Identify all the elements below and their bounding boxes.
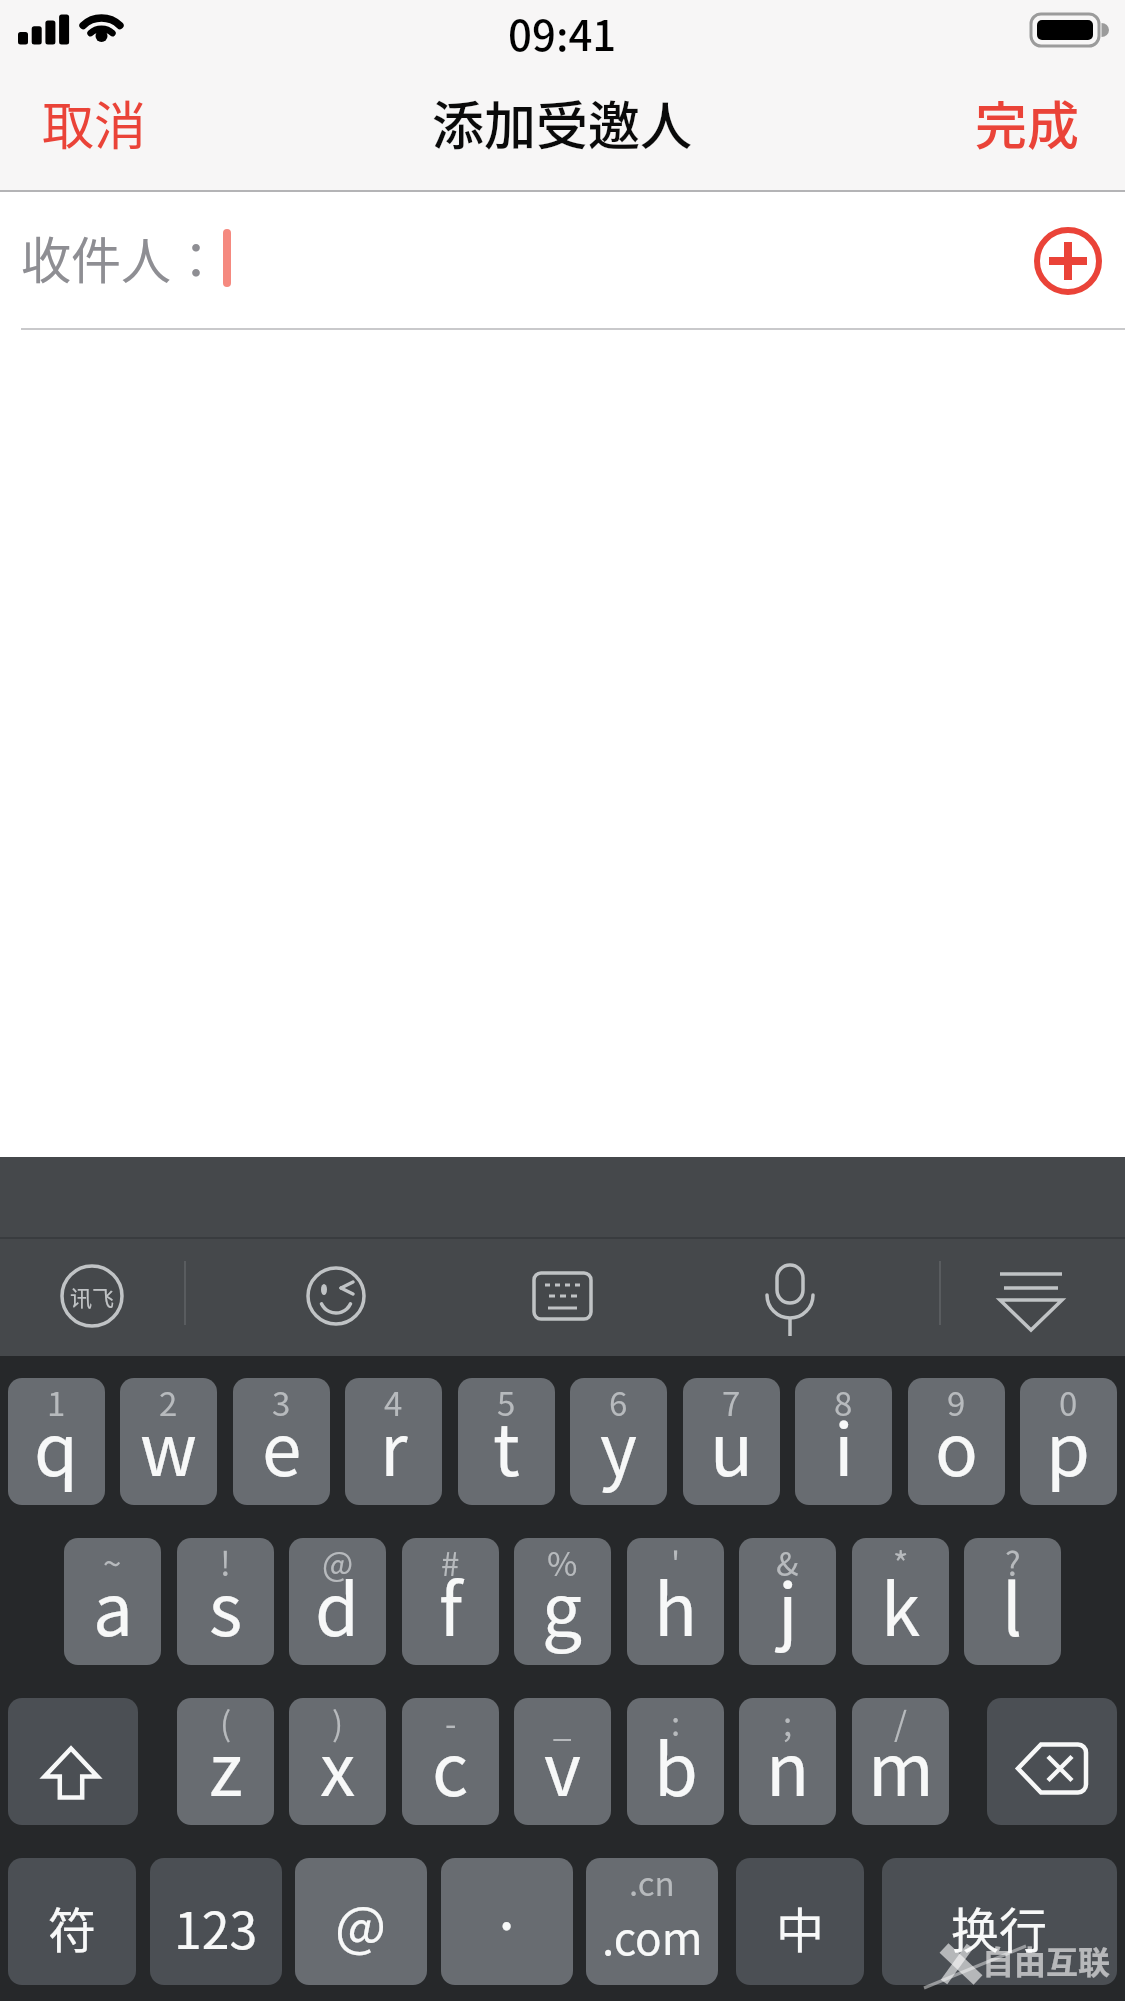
button[interactable]: 换行 bbox=[882, 1858, 1117, 1985]
staticText: · bbox=[490, 1878, 524, 1965]
staticText: ' bbox=[671, 1538, 681, 1584]
button[interactable]: ) bbox=[289, 1698, 386, 1825]
staticText: 8 bbox=[834, 1378, 853, 1424]
button[interactable]: : bbox=[627, 1698, 724, 1825]
staticText: 0 bbox=[1059, 1378, 1078, 1424]
staticText: j bbox=[778, 1554, 798, 1657]
button[interactable]: 5 bbox=[458, 1378, 555, 1505]
button[interactable]: * bbox=[852, 1538, 949, 1665]
staticText: : bbox=[671, 1698, 681, 1744]
staticText: / bbox=[894, 1698, 907, 1744]
staticText: 取消 bbox=[42, 85, 147, 160]
staticText: q bbox=[34, 1394, 79, 1497]
staticText: 4 bbox=[384, 1378, 403, 1424]
staticText: 6 bbox=[609, 1378, 628, 1424]
staticText: .cn bbox=[629, 1858, 675, 1904]
staticText: w bbox=[140, 1394, 197, 1497]
button[interactable]: · bbox=[441, 1858, 573, 1985]
button[interactable]: ? bbox=[964, 1538, 1061, 1665]
staticText: 添加受邀人 bbox=[432, 85, 693, 160]
staticText: _ bbox=[553, 1698, 572, 1744]
staticText: ) bbox=[332, 1698, 344, 1744]
staticText: p bbox=[1046, 1394, 1091, 1497]
button[interactable]: 符 bbox=[8, 1858, 136, 1985]
button[interactable]: 6 bbox=[570, 1378, 667, 1505]
staticText: 换行 bbox=[951, 1892, 1048, 1962]
button[interactable]: 1 bbox=[8, 1378, 105, 1505]
staticText: b bbox=[654, 1714, 698, 1817]
staticText: @ bbox=[322, 1538, 354, 1584]
staticText: 2 bbox=[159, 1378, 178, 1424]
button[interactable]: 7 bbox=[683, 1378, 780, 1505]
button[interactable] bbox=[225, 1239, 450, 1356]
staticText: m bbox=[868, 1714, 934, 1817]
staticText: f bbox=[439, 1554, 463, 1657]
staticText: 3 bbox=[272, 1378, 291, 1424]
staticText: * bbox=[893, 1538, 909, 1584]
button[interactable]: _ bbox=[514, 1698, 611, 1825]
button[interactable]: ~ bbox=[64, 1538, 161, 1665]
button[interactable]: 中 bbox=[736, 1858, 864, 1985]
staticText: 收件人： bbox=[21, 221, 221, 293]
button[interactable]: 0 bbox=[1020, 1378, 1117, 1505]
staticText: t bbox=[493, 1394, 520, 1497]
staticText: 1 bbox=[47, 1378, 66, 1424]
button[interactable] bbox=[675, 1239, 900, 1356]
button[interactable]: # bbox=[402, 1538, 499, 1665]
button[interactable]: 2 bbox=[120, 1378, 217, 1505]
button[interactable] bbox=[8, 1698, 138, 1825]
button[interactable]: - bbox=[402, 1698, 499, 1825]
button[interactable]: 9 bbox=[908, 1378, 1005, 1505]
button[interactable]: & bbox=[739, 1538, 836, 1665]
staticText: a bbox=[93, 1554, 133, 1657]
staticText: s bbox=[209, 1554, 243, 1657]
button[interactable]: 4 bbox=[345, 1378, 442, 1505]
button[interactable]: ; bbox=[739, 1698, 836, 1825]
button[interactable]: ( bbox=[177, 1698, 274, 1825]
staticText: 中 bbox=[776, 1892, 825, 1962]
button[interactable] bbox=[987, 1698, 1117, 1825]
staticText: 123 bbox=[174, 1891, 258, 1963]
staticText: r bbox=[380, 1394, 408, 1497]
staticText: z bbox=[209, 1714, 243, 1817]
staticText: ~ bbox=[103, 1538, 122, 1584]
button[interactable]: 8 bbox=[795, 1378, 892, 1505]
button[interactable]: 取消 bbox=[42, 85, 147, 160]
staticText: d bbox=[315, 1554, 360, 1657]
staticText: # bbox=[441, 1538, 460, 1584]
staticText: v bbox=[544, 1714, 581, 1817]
staticText: .com bbox=[602, 1904, 703, 1968]
button[interactable] bbox=[0, 1239, 225, 1356]
button[interactable] bbox=[450, 1239, 675, 1356]
button[interactable] bbox=[900, 1239, 1125, 1356]
staticText: 5 bbox=[497, 1378, 516, 1424]
button[interactable]: 收件人： bbox=[0, 192, 1125, 330]
staticText: i bbox=[834, 1394, 854, 1497]
staticText: h bbox=[654, 1554, 698, 1657]
staticText: & bbox=[776, 1538, 799, 1584]
button[interactable]: @ bbox=[289, 1538, 386, 1665]
staticText: 09:41 bbox=[508, 2, 617, 60]
button[interactable]: @ bbox=[295, 1858, 427, 1985]
staticText: c bbox=[432, 1714, 469, 1817]
staticText: u bbox=[710, 1394, 754, 1497]
button[interactable]: % bbox=[514, 1538, 611, 1665]
button[interactable]: / bbox=[852, 1698, 949, 1825]
button[interactable]: 123 bbox=[150, 1858, 282, 1985]
button[interactable]: ' bbox=[627, 1538, 724, 1665]
staticText: 符 bbox=[48, 1892, 97, 1962]
staticText: 9 bbox=[947, 1378, 966, 1424]
staticText: ( bbox=[220, 1698, 232, 1744]
button[interactable]: 完成 bbox=[975, 85, 1080, 160]
staticText: ; bbox=[783, 1698, 793, 1744]
staticText: 完成 bbox=[975, 85, 1080, 160]
staticText: 讯飞 bbox=[70, 1280, 115, 1312]
staticText: l bbox=[1002, 1554, 1023, 1657]
button[interactable] bbox=[1033, 226, 1103, 296]
staticText: 自由互联 bbox=[982, 1937, 1111, 1983]
staticText: e bbox=[262, 1394, 302, 1497]
staticText: k bbox=[881, 1554, 921, 1657]
button[interactable]: .cn bbox=[586, 1858, 718, 1985]
button[interactable]: 3 bbox=[233, 1378, 330, 1505]
button[interactable]: ! bbox=[177, 1538, 274, 1665]
